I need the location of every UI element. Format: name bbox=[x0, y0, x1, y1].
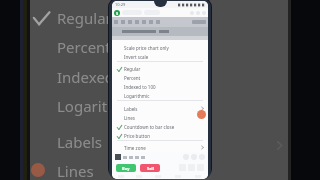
button[interactable]: Action bbox=[190, 11, 194, 15]
button[interactable]: Labels bbox=[30, 130, 114, 157]
staticText: Regular bbox=[57, 8, 112, 28]
button[interactable]: Logarithm bbox=[30, 94, 114, 121]
button[interactable]: Price button bbox=[112, 131, 208, 140]
staticText: Lines bbox=[57, 161, 94, 180]
button[interactable]: Invert scale bbox=[112, 52, 208, 61]
staticText: Percent bbox=[124, 75, 141, 81]
button[interactable]: Countdown to bar close bbox=[112, 122, 208, 131]
button[interactable]: Buy bbox=[116, 164, 136, 172]
button[interactable]: Indexed to 100 bbox=[112, 82, 208, 91]
staticText: Time zone bbox=[124, 145, 146, 151]
staticText: Indexed to 100 bbox=[124, 84, 156, 90]
button[interactable]: Lines bbox=[30, 159, 114, 180]
button[interactable]: Tool bbox=[191, 154, 197, 160]
staticText: Countdown to bar close bbox=[124, 124, 175, 130]
button[interactable]: Action bbox=[202, 11, 206, 15]
button[interactable]: Sell bbox=[140, 164, 160, 172]
button[interactable]: Indexed to bbox=[30, 65, 114, 92]
staticText: Invert scale bbox=[124, 54, 149, 60]
button[interactable]: Percent bbox=[30, 35, 114, 62]
button[interactable]: Action bbox=[196, 11, 200, 15]
button[interactable]: Regular bbox=[30, 6, 114, 33]
staticText: Labels bbox=[124, 106, 138, 112]
staticText: Logarithm bbox=[57, 96, 131, 116]
staticText: Indexed to bbox=[57, 67, 133, 87]
button[interactable]: Tool bbox=[199, 154, 205, 160]
button[interactable]: Tool bbox=[183, 154, 189, 160]
staticText: Percent bbox=[57, 37, 111, 57]
staticText: Logarithmic bbox=[124, 93, 150, 99]
staticText: Price button bbox=[124, 133, 150, 139]
button[interactable]: Regular bbox=[112, 64, 208, 73]
button[interactable]: Percent bbox=[112, 73, 208, 82]
staticText: Scale price chart only bbox=[124, 45, 169, 51]
staticText: Labels bbox=[57, 132, 103, 152]
button[interactable]: Lines bbox=[112, 113, 208, 122]
button[interactable]: Account bbox=[114, 10, 120, 16]
staticText: Regular bbox=[124, 66, 141, 72]
button[interactable]: Logarithmic bbox=[112, 91, 208, 100]
staticText: Lines bbox=[124, 115, 135, 121]
staticText: 10:29 bbox=[115, 2, 126, 7]
button[interactable]: Scale price chart only bbox=[112, 43, 208, 52]
staticText: S bbox=[116, 11, 119, 16]
button[interactable]: Labels bbox=[112, 104, 208, 113]
staticText: Buy bbox=[122, 166, 130, 171]
button[interactable]: Time zone bbox=[112, 143, 208, 152]
staticText: Sell bbox=[147, 166, 154, 171]
